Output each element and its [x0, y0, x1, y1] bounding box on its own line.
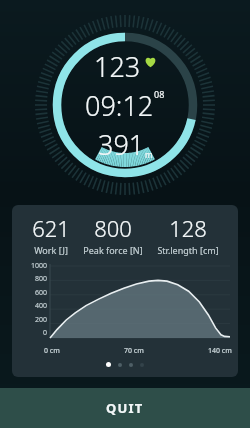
button[interactable]: 621	[12, 205, 238, 377]
staticText: 0 cm	[44, 346, 60, 356]
button[interactable]: QUIT	[0, 388, 250, 428]
staticText: 70 cm	[124, 346, 144, 356]
staticText: 600	[35, 288, 48, 298]
staticText: Work [J]	[34, 244, 68, 256]
staticText: Str.length [cm]	[157, 244, 219, 256]
staticText: 128	[169, 213, 207, 243]
staticText: 140 cm	[208, 346, 232, 356]
staticText: 0	[43, 328, 48, 338]
staticText: 800	[94, 213, 132, 243]
staticText: 123	[94, 48, 141, 85]
staticText: QUIT	[106, 399, 144, 417]
staticText: 800	[35, 274, 48, 284]
staticText: 621	[32, 213, 70, 243]
staticText: 200	[35, 315, 48, 325]
staticText: 09:12	[85, 87, 154, 124]
staticText: 08	[154, 88, 165, 100]
staticText: 1000	[31, 261, 48, 271]
staticText: m	[145, 149, 153, 160]
staticText: 391	[98, 126, 145, 163]
staticText: 400	[35, 301, 48, 311]
staticText: Peak force [N]	[83, 244, 143, 256]
